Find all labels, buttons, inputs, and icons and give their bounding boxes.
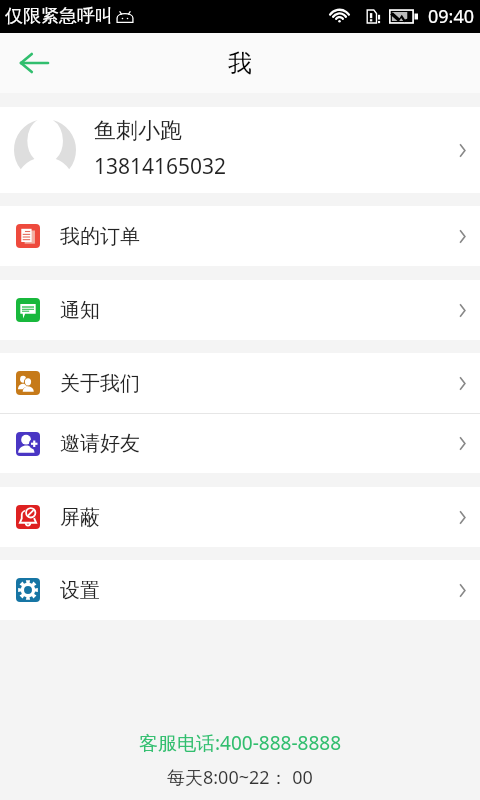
staticText: 客服电话:400-888-8888 [139, 730, 342, 756]
staticText: 关于我们 [60, 371, 140, 396]
staticText: 屏蔽 [60, 505, 100, 530]
staticText: 通知 [60, 298, 100, 323]
staticText: 仅限紧急呼叫 [5, 5, 113, 28]
staticText: 我 [228, 48, 252, 78]
staticText: 13814165032 [94, 152, 227, 181]
staticText: 鱼刺小跑 [94, 117, 182, 145]
button[interactable]: 通知 [0, 280, 480, 340]
button[interactable]: 邀请好友 [0, 414, 480, 473]
button[interactable]: Back [0, 33, 68, 93]
staticText: 设置 [60, 578, 100, 603]
button[interactable]: 设置 [0, 560, 480, 620]
button[interactable]: 关于我们 [0, 353, 480, 413]
staticText: 我的订单 [60, 224, 140, 249]
staticText: 邀请好友 [60, 431, 140, 456]
button[interactable]: 我的订单 [0, 206, 480, 266]
staticText: 每天8:00~22： 00 [167, 765, 313, 790]
staticText: 09:40 [428, 4, 475, 29]
button[interactable]: 鱼刺小跑 [0, 107, 480, 193]
button[interactable]: 屏蔽 [0, 487, 480, 547]
